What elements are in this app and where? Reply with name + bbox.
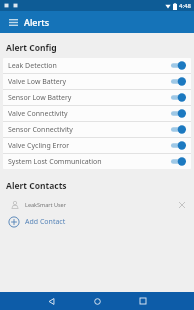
button[interactable]: Toggle alert [170,77,186,86]
staticText: LeakSmart User [25,201,66,208]
button[interactable]: Open navigation menu [6,15,20,29]
button[interactable]: Toggle alert [170,61,186,70]
staticText: Alerts [24,16,50,28]
button[interactable]: Home [89,293,105,309]
button[interactable]: Toggle alert [170,93,186,102]
button[interactable]: Valve Cycling Error [3,138,191,153]
button[interactable]: System Lost Communication [3,154,191,169]
button[interactable]: Toggle alert [170,141,186,150]
staticText: Valve Low Battery [8,77,67,87]
staticText: Valve Cycling Error [8,141,70,151]
button[interactable]: Valve Connectivity [3,106,191,121]
button[interactable]: Toggle alert [170,109,186,118]
staticText: Sensor Connectivity [8,125,73,135]
staticText: Add Contact [25,217,66,227]
staticText: Alert Config [6,42,57,54]
staticText: Valve Connectivity [8,109,68,119]
staticText: System Lost Communication [8,157,102,167]
staticText: Alert Contacts [6,180,67,192]
button[interactable]: Back [43,293,59,309]
staticText: 4:48 [179,2,191,10]
button[interactable]: Sensor Connectivity [3,122,191,137]
button[interactable]: Remove contact [176,199,188,211]
button[interactable]: Recent apps [135,293,151,309]
button[interactable]: Toggle alert [170,157,186,166]
button[interactable]: Add Contact [0,213,194,231]
button[interactable]: LeakSmart User [0,196,194,213]
staticText: Sensor Low Battery [8,93,72,103]
button[interactable]: Leak Detection [3,58,191,73]
staticText: Leak Detection [8,61,57,71]
button[interactable]: Sensor Low Battery [3,90,191,105]
button[interactable]: Toggle alert [170,125,186,134]
button[interactable]: Valve Low Battery [3,74,191,89]
